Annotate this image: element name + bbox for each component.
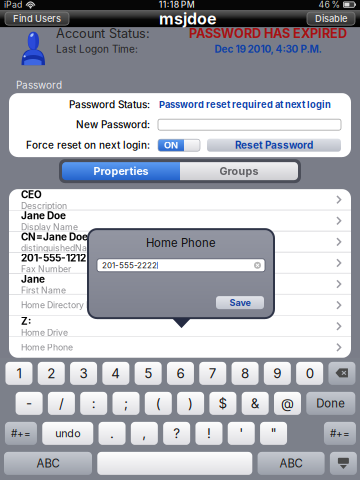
- staticText: Password: [16, 79, 62, 91]
- button[interactable]: Jane Doe: [9, 210, 351, 231]
- staticText: Z:: [21, 315, 31, 327]
- staticText: distinguishedName: [21, 243, 100, 253]
- button[interactable]: ;: [112, 392, 139, 415]
- staticText: ABC: [36, 456, 59, 470]
- staticText: 4: [111, 365, 120, 381]
- button[interactable]: CN=Jane Doe,C: [9, 231, 351, 252]
- staticText: Reset Password: [235, 139, 313, 151]
- button[interactable]: (: [145, 392, 172, 415]
- staticText: CEO: [21, 189, 42, 201]
- staticText: Home Phone: [146, 236, 216, 250]
- button[interactable]: &: [242, 392, 269, 415]
- button[interactable]: 3: [70, 362, 97, 385]
- staticText: Password reset required at next login: [159, 99, 331, 110]
- staticText: ": [271, 425, 277, 441]
- staticText: &: [251, 395, 260, 411]
- staticText: 2: [47, 365, 55, 381]
- staticText: .: [110, 425, 114, 441]
- staticText: Find Users: [13, 13, 61, 24]
- button[interactable]: 2: [38, 362, 65, 385]
- button[interactable]: ON: [158, 139, 200, 151]
- button[interactable]: ": [260, 422, 287, 445]
- staticText: -: [26, 395, 32, 411]
- button[interactable]: ): [177, 392, 204, 415]
- staticText: ): [188, 395, 193, 411]
- button[interactable]: 0: [296, 362, 323, 385]
- staticText: (: [156, 395, 161, 411]
- staticText: Done: [316, 396, 345, 410]
- button[interactable]: :: [80, 392, 107, 415]
- button[interactable]: ?: [163, 422, 190, 445]
- button[interactable]: Home Phone: [9, 337, 351, 358]
- staticText: 9: [273, 365, 281, 381]
- button[interactable]: Save: [216, 296, 264, 309]
- staticText: 11:18 PM: [159, 0, 195, 10]
- button[interactable]: #+=: [324, 422, 356, 445]
- staticText: CN=Jane Doe,C: [21, 231, 98, 243]
- button[interactable]: Done: [306, 392, 355, 415]
- button[interactable]: undo: [42, 422, 93, 445]
- staticText: 201-555-2222: [102, 260, 157, 270]
- button[interactable]: CEO: [9, 189, 351, 210]
- staticText: !: [207, 425, 211, 441]
- staticText: Account Status:: [56, 26, 150, 41]
- staticText: Properties: [93, 165, 148, 177]
- staticText: 8: [241, 365, 249, 381]
- staticText: #+=: [11, 427, 31, 439]
- staticText: Last Logon Time:: [56, 43, 138, 55]
- button[interactable]: Reset Password: [207, 139, 341, 152]
- button[interactable]: 5: [135, 362, 162, 385]
- button[interactable]: !: [195, 422, 222, 445]
- staticText: Home Directory Path: [21, 300, 105, 310]
- button[interactable]: 9: [264, 362, 291, 385]
- staticText: Jane Doe: [21, 210, 66, 222]
- button[interactable]: Properties: [62, 162, 180, 180]
- button[interactable]: ,: [131, 422, 158, 445]
- staticText: ,: [142, 425, 146, 441]
- staticText: ;: [124, 395, 128, 411]
- staticText: Save: [229, 297, 250, 308]
- staticText: iPad: [4, 0, 22, 10]
- staticText: 7: [209, 365, 217, 381]
- button[interactable]: ABC: [258, 452, 325, 475]
- button[interactable]: Hide Keyboard: [330, 452, 357, 475]
- staticText: 5: [144, 365, 152, 381]
- button[interactable]: Disable: [307, 12, 355, 25]
- staticText: Fax Number: [21, 264, 71, 274]
- staticText: 201-555-1212: [21, 252, 86, 264]
- button[interactable]: ABC: [4, 452, 92, 475]
- button[interactable]: #+=: [5, 422, 37, 445]
- staticText: #+=: [330, 427, 350, 439]
- button[interactable]: Home Directory Path: [9, 295, 351, 316]
- button[interactable]: /: [48, 392, 75, 415]
- button[interactable]: Backspace: [328, 362, 355, 385]
- staticText: Home Phone: [21, 342, 73, 353]
- button[interactable]: 8: [232, 362, 259, 385]
- staticText: ': [239, 425, 243, 441]
- button[interactable]: 201-555-1212: [9, 252, 351, 273]
- staticText: Groups: [219, 165, 258, 177]
- button[interactable]: -: [16, 392, 43, 415]
- staticText: Jane: [21, 273, 45, 285]
- staticText: First Name: [21, 285, 66, 296]
- button[interactable]: 6: [167, 362, 194, 385]
- button[interactable]: .: [98, 422, 125, 445]
- button[interactable]: Z:: [9, 316, 351, 337]
- staticText: :: [92, 395, 96, 411]
- staticText: Dec 19 2010, 4:30 P.M.: [214, 43, 321, 55]
- button[interactable]: 1: [5, 362, 32, 385]
- staticText: Description: [21, 201, 67, 211]
- staticText: Force reset on next login:: [26, 139, 150, 151]
- button[interactable]: [97, 452, 252, 475]
- button[interactable]: Find Users: [5, 12, 69, 25]
- button[interactable]: @: [274, 392, 301, 415]
- button[interactable]: Jane: [9, 273, 351, 295]
- button[interactable]: Groups: [180, 162, 298, 180]
- staticText: 46 %: [318, 0, 340, 10]
- button[interactable]: ': [228, 422, 255, 445]
- staticText: @: [281, 395, 294, 411]
- staticText: 3: [79, 365, 87, 381]
- button[interactable]: 4: [102, 362, 129, 385]
- button[interactable]: $: [209, 392, 236, 415]
- button[interactable]: 7: [199, 362, 226, 385]
